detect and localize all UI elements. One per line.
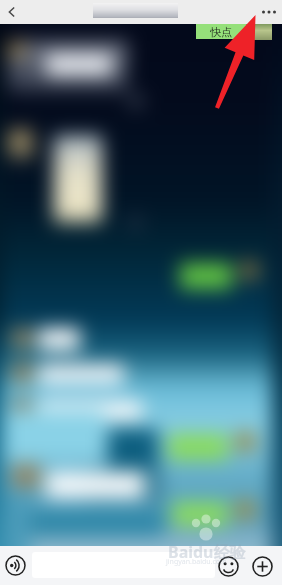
- button[interactable]: Emoji: [217, 555, 239, 577]
- staticText: 快点: [210, 25, 232, 39]
- button[interactable]: More options: [256, 0, 282, 24]
- button[interactable]: [32, 552, 215, 578]
- button[interactable]: Back: [0, 0, 24, 24]
- button[interactable]: More functions: [251, 555, 273, 577]
- staticText: Baidu经验: [168, 541, 246, 563]
- staticText: jingyan.baidu.com: [166, 557, 227, 567]
- button[interactable]: Voice message: [3, 553, 28, 578]
